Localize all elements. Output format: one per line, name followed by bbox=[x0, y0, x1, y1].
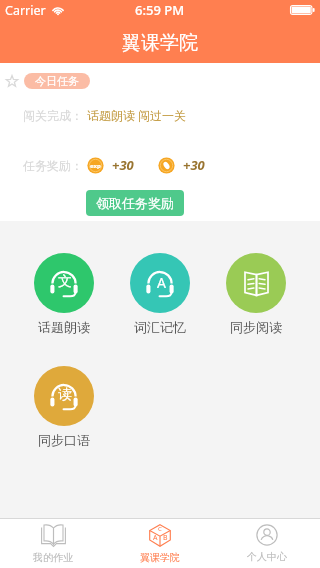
staticText: B bbox=[163, 533, 168, 543]
staticText: 任务奖励： bbox=[23, 158, 83, 173]
staticText: 翼课学院 bbox=[122, 31, 198, 55]
staticText: +30 bbox=[183, 156, 205, 174]
staticText: 闯关完成： bbox=[23, 108, 83, 123]
staticText: C bbox=[158, 525, 162, 533]
staticText: 读 bbox=[58, 386, 72, 404]
staticText: +30 bbox=[112, 156, 134, 174]
staticText: 话题朗读 闯过一关 bbox=[87, 107, 187, 123]
staticText: 同步口语 bbox=[38, 432, 90, 448]
button[interactable]: 今日任务 bbox=[24, 73, 90, 89]
staticText: 6:59 PM bbox=[135, 1, 185, 19]
button[interactable]: 文 bbox=[16, 253, 112, 335]
button[interactable]: C bbox=[106, 519, 213, 568]
staticText: 领取任务奖励 bbox=[96, 195, 174, 211]
staticText: 今日任务 bbox=[35, 74, 79, 88]
staticText: 词汇记忆 bbox=[134, 319, 186, 335]
button[interactable]: 读 bbox=[16, 366, 112, 448]
staticText: A bbox=[157, 273, 166, 292]
button[interactable]: 个人中心 bbox=[213, 519, 320, 568]
button[interactable]: 我的作业 bbox=[0, 519, 106, 568]
button[interactable]: A bbox=[112, 253, 208, 335]
staticText: 文 bbox=[58, 273, 72, 291]
staticText: Carrier bbox=[5, 2, 46, 19]
staticText: A bbox=[153, 533, 158, 543]
staticText: 我的作业 bbox=[33, 551, 73, 564]
staticText: 同步阅读 bbox=[230, 319, 282, 335]
button[interactable]: 领取任务奖励 bbox=[86, 190, 184, 216]
staticText: 翼课学院 bbox=[140, 551, 180, 564]
staticText: 个人中心 bbox=[247, 550, 287, 563]
button[interactable]: 同步阅读 bbox=[208, 253, 304, 335]
staticText: exp bbox=[90, 162, 101, 170]
staticText: 话题朗读 bbox=[38, 319, 90, 335]
